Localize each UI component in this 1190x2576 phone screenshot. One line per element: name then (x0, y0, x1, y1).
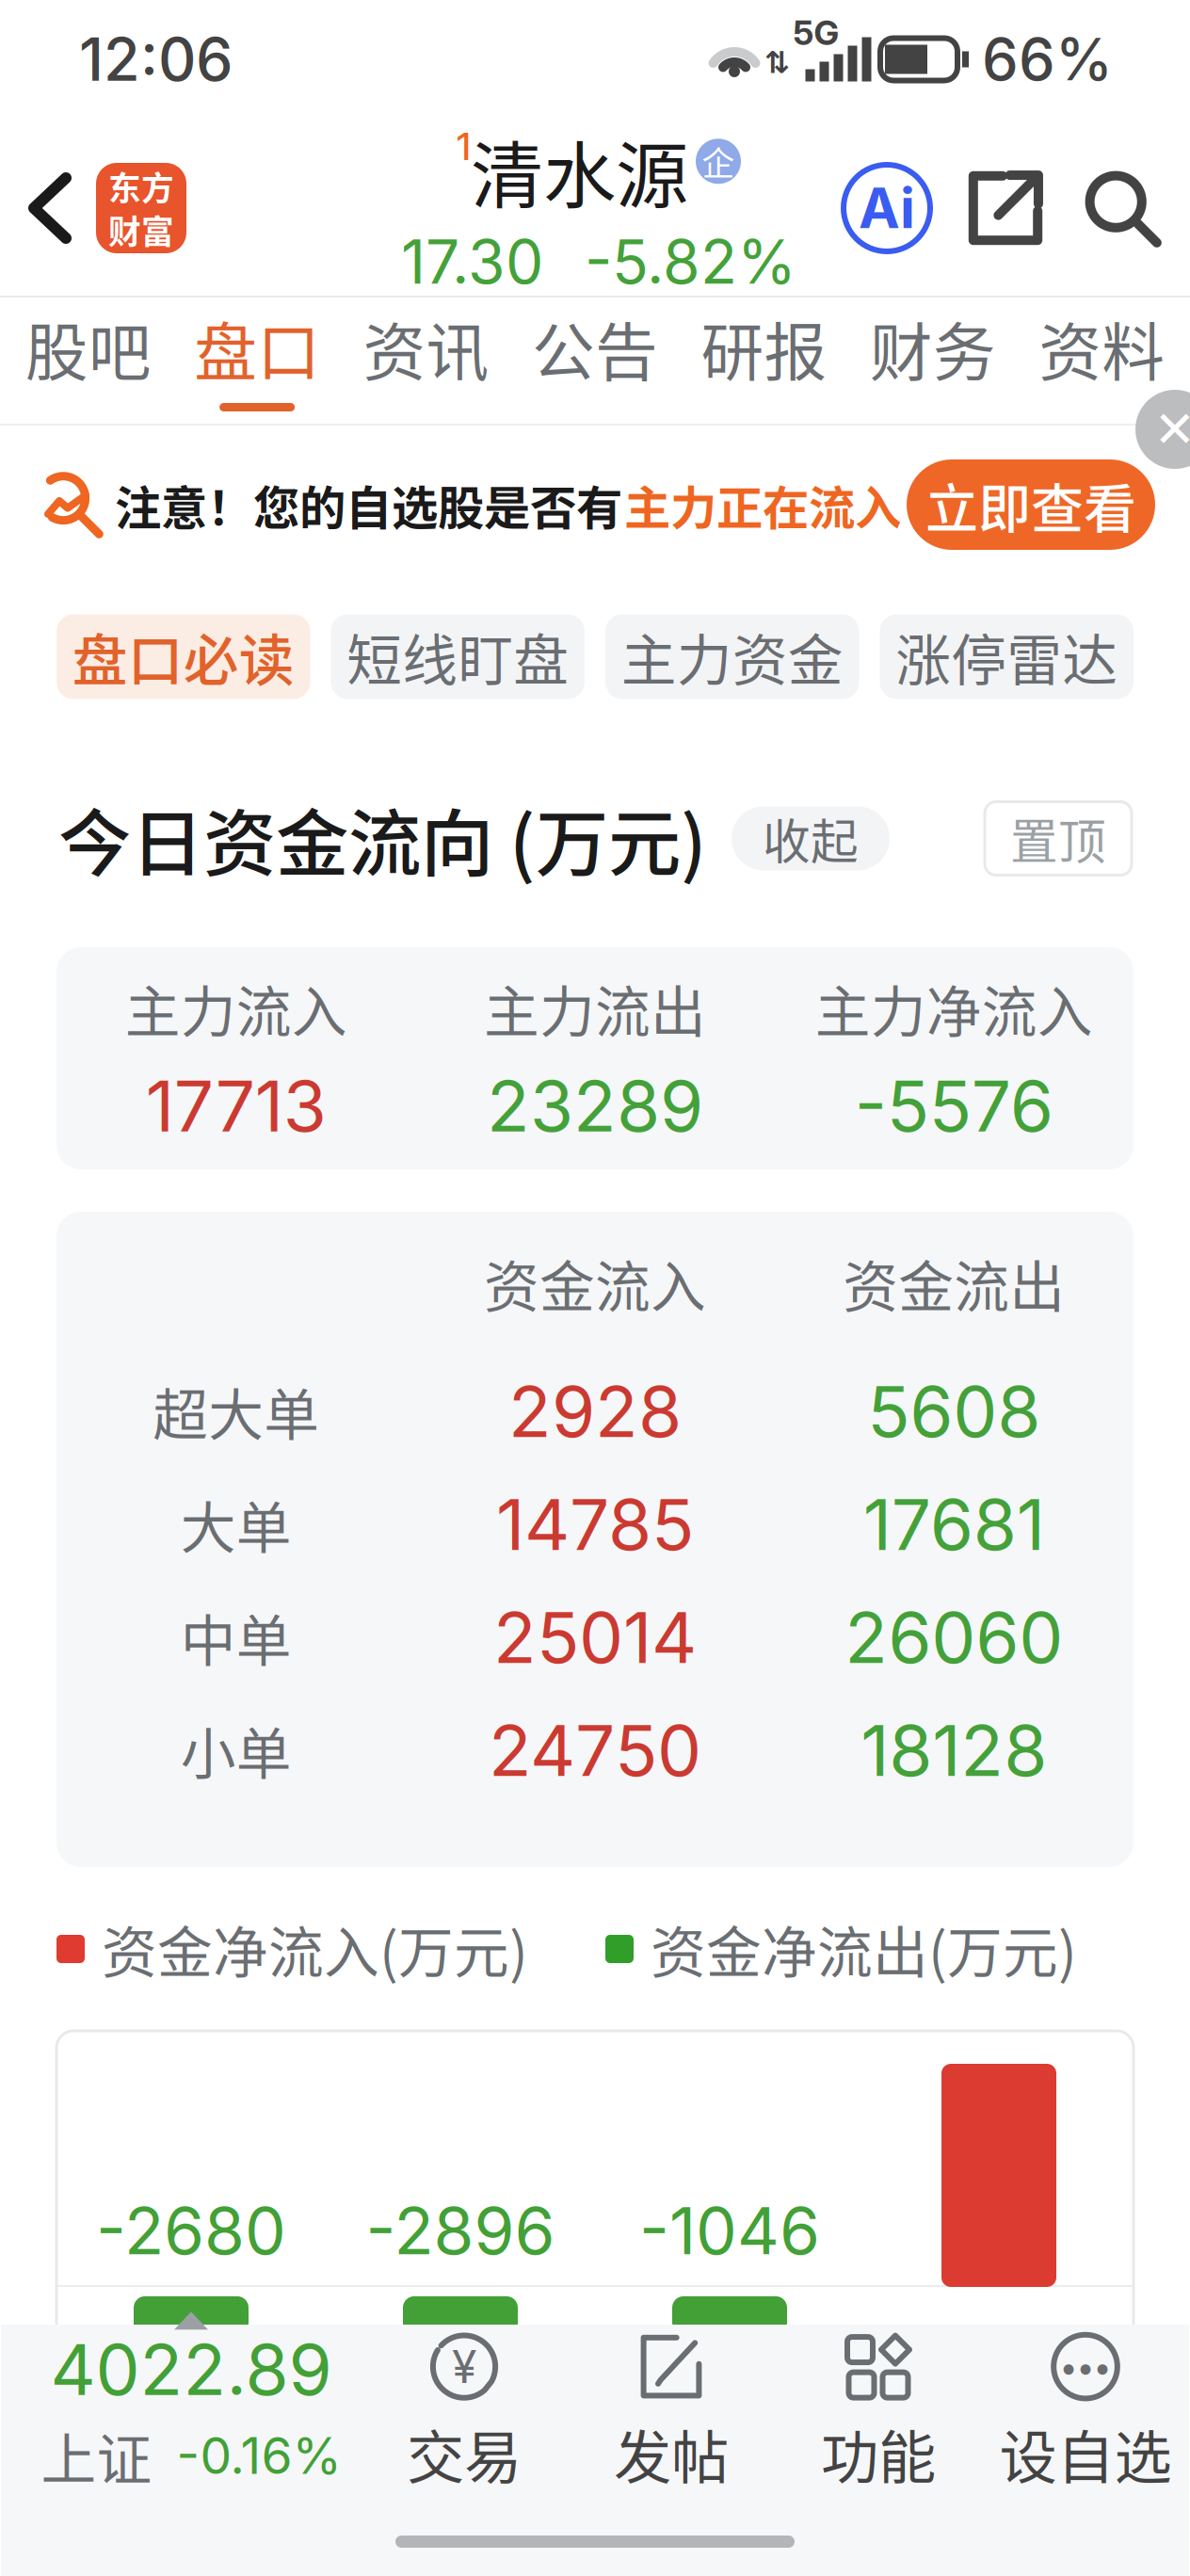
staticText: 23289 (487, 1063, 703, 1148)
staticText: 24750 (489, 1708, 701, 1793)
staticText: 17681 (863, 1482, 1045, 1567)
button[interactable]: 置顶 (985, 802, 1132, 875)
staticText: 东方 (108, 163, 174, 210)
staticText: 财富 (108, 206, 174, 253)
staticText: 设自选 (999, 2412, 1172, 2495)
button[interactable]: 股吧 (4, 298, 173, 426)
button[interactable]: 盘口必读 (56, 614, 310, 699)
staticText: 5G (793, 12, 839, 53)
staticText: 17.30 (401, 225, 543, 298)
button[interactable]: 收起 (732, 806, 890, 870)
button[interactable]: 公告 (511, 298, 679, 426)
staticText: 注意！您的自选股是否有 (115, 471, 622, 538)
staticText: Ai (859, 175, 915, 241)
button[interactable]: 东方财富 (96, 163, 186, 253)
staticText: 盘口必读 (72, 617, 294, 697)
staticText: 发帖 (614, 2412, 729, 2495)
staticText: ✕ (1154, 400, 1190, 459)
staticText: 交易 (407, 2412, 522, 2495)
button[interactable]: 涨停雷达 (880, 614, 1134, 699)
button[interactable]: 搜索 (1069, 170, 1190, 246)
staticText: -2896 (366, 2191, 555, 2270)
staticText: 5608 (867, 1369, 1041, 1454)
staticText: 18128 (861, 1708, 1047, 1793)
staticText: 短线盯盘 (347, 617, 569, 697)
button[interactable]: 研报 (679, 298, 848, 426)
button[interactable]: 短线盯盘 (331, 614, 585, 699)
button[interactable]: 功能 (775, 2325, 982, 2490)
staticText: 股吧 (25, 303, 151, 394)
button[interactable]: 注意！您的自选股是否有 (0, 426, 1190, 584)
staticText: ¥ (452, 2339, 476, 2394)
button[interactable]: 主力资金 (605, 614, 859, 699)
staticText: 资金净流入(万元) (102, 1909, 528, 1989)
staticText: 66% (982, 24, 1113, 94)
staticText: 资金流出 (843, 1243, 1065, 1323)
staticText: 收起 (763, 804, 859, 873)
staticText: -5576 (855, 1063, 1053, 1148)
button[interactable]: 关闭 (1111, 426, 1190, 505)
staticText: 功能 (821, 2412, 936, 2495)
staticText: 4022.89 (50, 2327, 332, 2412)
staticText: 主力正在流入 (624, 471, 901, 538)
staticText: ••• (1060, 2347, 1111, 2386)
staticText: 公告 (532, 303, 658, 394)
staticText: 主力流出 (484, 968, 706, 1048)
button[interactable]: AI 助手 (832, 165, 941, 251)
staticText: 上证 (41, 2416, 152, 2496)
staticText: 资金净流出(万元) (651, 1909, 1077, 1989)
staticText: 置顶 (1010, 804, 1106, 873)
button[interactable]: ¥ (361, 2325, 568, 2490)
staticText: 2928 (508, 1369, 682, 1454)
staticText: 中单 (180, 1597, 292, 1677)
staticText: 研报 (701, 303, 827, 394)
staticText: 主力资金 (621, 617, 843, 697)
staticText: -5.82% (585, 225, 796, 298)
staticText: 超大单 (153, 1371, 319, 1451)
staticText: 大单 (180, 1484, 292, 1564)
staticText: ⇅ (764, 45, 790, 80)
staticText: 清水源 (471, 118, 688, 223)
button[interactable]: 发帖 (568, 2325, 775, 2490)
staticText: 立即查看 (925, 467, 1136, 543)
staticText: 财务 (870, 303, 996, 394)
button[interactable]: 分享 (941, 172, 1069, 244)
staticText: 资金流入 (484, 1243, 706, 1323)
staticText: -0.16% (177, 2425, 341, 2486)
button[interactable]: 上证指数 4022.89 (1, 2325, 361, 2490)
button[interactable]: 资料 (1017, 298, 1186, 426)
staticText: 主力流入 (125, 968, 347, 1048)
staticText: -1046 (639, 2191, 820, 2270)
staticText: 今日资金流向 (万元) (58, 786, 707, 891)
staticText: 主力净流入 (815, 968, 1093, 1048)
staticText: 企 (702, 138, 735, 185)
button[interactable]: 资讯 (342, 298, 511, 426)
staticText: 涨停雷达 (896, 617, 1118, 697)
staticText: 1 (457, 124, 471, 169)
staticText: 小单 (180, 1710, 292, 1790)
staticText: 盘口 (194, 303, 320, 394)
button[interactable]: ••• (982, 2325, 1189, 2490)
button[interactable]: 盘口 (173, 298, 342, 426)
staticText: 12:06 (79, 24, 233, 95)
staticText: 资讯 (363, 303, 489, 394)
staticText: -2680 (96, 2191, 286, 2270)
button[interactable]: 财务 (848, 298, 1017, 426)
staticText: 25014 (493, 1595, 697, 1680)
button[interactable]: 返回 (0, 140, 96, 276)
staticText: 资料 (1039, 303, 1165, 394)
staticText: 14785 (496, 1482, 694, 1567)
staticText: 17713 (146, 1063, 326, 1148)
staticText: 26060 (845, 1595, 1063, 1680)
